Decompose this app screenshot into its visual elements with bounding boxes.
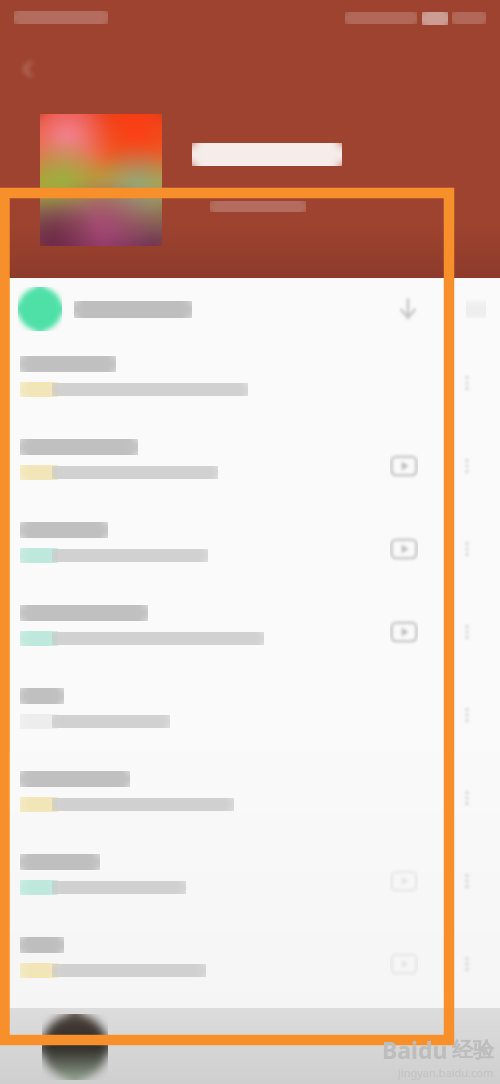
button[interactable]: Play MV <box>381 609 427 655</box>
button[interactable]: More <box>444 941 490 987</box>
button[interactable]: Play MV <box>381 526 427 572</box>
staticText: jingyan.baidu.com <box>398 1065 494 1080</box>
button[interactable]: Play MV <box>381 858 427 904</box>
button[interactable]: Play MV <box>381 443 427 489</box>
button[interactable]: Play MV <box>0 508 500 591</box>
button[interactable]: More <box>0 342 500 425</box>
button[interactable]: Download all <box>384 285 432 333</box>
button[interactable]: More <box>444 858 490 904</box>
button[interactable] <box>0 1008 500 1084</box>
staticText: Baidu <box>382 1034 448 1065</box>
button[interactable]: More <box>0 674 500 757</box>
button[interactable]: Back <box>8 48 50 90</box>
button[interactable]: More <box>444 609 490 655</box>
button[interactable]: More <box>444 443 490 489</box>
button[interactable]: More <box>444 526 490 572</box>
button[interactable]: More options <box>456 289 496 329</box>
button[interactable]: Download all <box>0 278 500 340</box>
button[interactable]: Play MV <box>381 941 427 987</box>
button[interactable]: More <box>0 757 500 840</box>
button[interactable]: Play MV <box>0 840 500 923</box>
button[interactable]: More <box>444 775 490 821</box>
button[interactable]: Play MV <box>0 591 500 674</box>
button[interactable]: Play MV <box>0 923 500 1006</box>
staticText: 经验 <box>452 1037 494 1063</box>
button[interactable]: More <box>444 692 490 738</box>
button[interactable]: Play MV <box>0 425 500 508</box>
button[interactable]: Album cover <box>40 114 162 246</box>
button[interactable]: More <box>444 360 490 406</box>
